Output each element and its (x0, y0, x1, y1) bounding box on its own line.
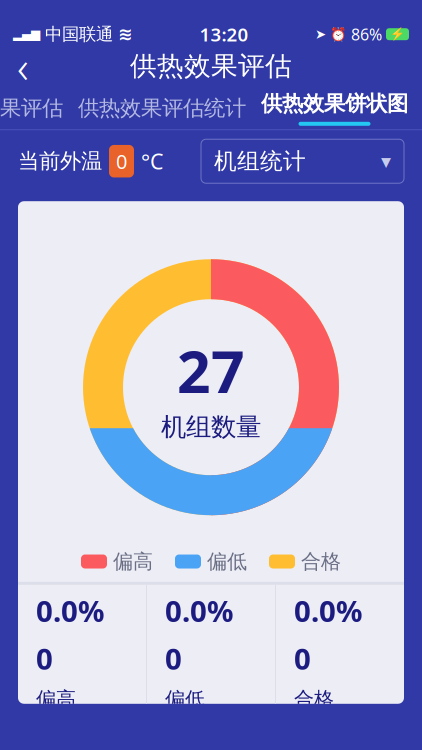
staticText: 供热效果饼状图 (261, 91, 408, 117)
button[interactable]: Back (0, 45, 46, 87)
staticText: 27 (177, 332, 245, 410)
staticText: 偏高 (36, 687, 76, 712)
staticText: ▂▄▆ (13, 27, 40, 41)
staticText: 合格 (301, 549, 341, 574)
staticText: 中国联通 (45, 24, 113, 45)
staticText: °C (141, 147, 163, 175)
staticText: ⚡ (390, 27, 405, 41)
staticText: 偏高 (113, 549, 153, 574)
staticText: 0 (116, 148, 127, 174)
staticText: 果评估 (0, 95, 63, 121)
button[interactable]: 机组统计 (201, 139, 404, 183)
staticText: 当前外温 (18, 148, 102, 174)
staticText: 0.0% (165, 591, 233, 630)
staticText: ➤ (315, 27, 326, 42)
staticText: 偏低 (207, 549, 247, 574)
staticText: ‹ (17, 37, 29, 95)
button[interactable]: 果评估 (0, 95, 63, 121)
staticText: 供热效果评估 (130, 50, 292, 83)
staticText: ⏰ (330, 27, 347, 42)
staticText: 86% (351, 24, 382, 45)
staticText: 0 (36, 639, 53, 678)
staticText: ≋ (118, 24, 133, 44)
staticText: 偏低 (165, 687, 205, 712)
staticText: 供热效果评估统计 (78, 95, 246, 121)
staticText: 13:20 (199, 22, 248, 47)
staticText: 0 (294, 639, 311, 678)
button[interactable]: 供热效果评估统计 (78, 95, 246, 121)
staticText: 0 (165, 639, 182, 678)
staticText: 0.0% (36, 591, 104, 630)
staticText: ▾ (381, 150, 391, 173)
staticText: 机组数量 (161, 412, 261, 443)
staticText: 合格 (294, 687, 334, 712)
button[interactable]: 供热效果饼状图 (261, 91, 408, 126)
staticText: 机组统计 (214, 147, 306, 175)
staticText: 0.0% (294, 591, 362, 630)
